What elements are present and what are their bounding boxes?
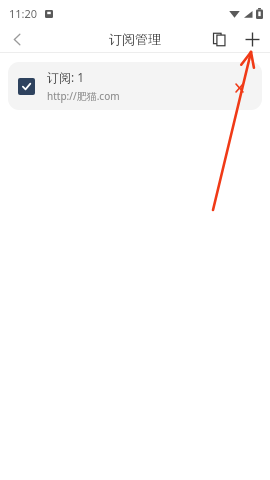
staticText: 11:20: [9, 6, 38, 21]
button[interactable]: Copy: [204, 26, 234, 52]
staticText: 订阅: 1: [47, 69, 85, 85]
button[interactable]: Selected: [18, 78, 35, 95]
staticText: 订阅管理: [109, 31, 161, 47]
button[interactable]: Add: [236, 26, 268, 52]
staticText: http://肥猫.com: [47, 89, 120, 103]
button[interactable]: Selected: [8, 62, 262, 110]
button[interactable]: Back: [0, 26, 34, 52]
